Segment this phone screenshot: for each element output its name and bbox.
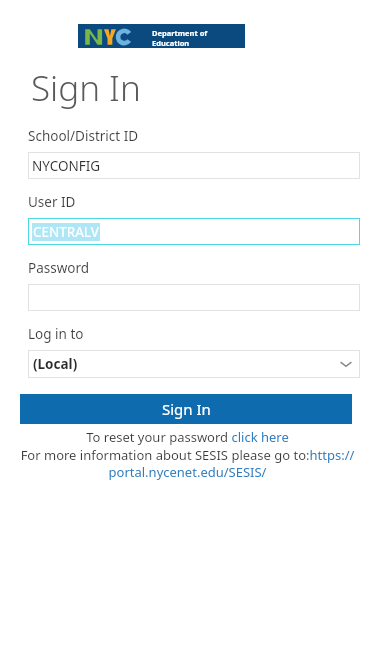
button[interactable]: Sign In: [20, 394, 352, 424]
staticText: Sign In: [162, 399, 211, 419]
other: NYC Department of Education: [78, 24, 245, 48]
button[interactable]: NYCONFIG: [28, 152, 360, 179]
staticText: Department of: [152, 28, 208, 38]
button[interactable]: (Local): [28, 350, 360, 378]
staticText: Education: [152, 38, 190, 48]
button[interactable]: To reset your password click here: [86, 428, 289, 446]
staticText: User ID: [28, 193, 76, 211]
button[interactable]: CENTRALV: [28, 218, 360, 245]
button[interactable]: For more information about SESIS please …: [18, 446, 357, 481]
staticText: Sign In: [31, 64, 141, 112]
staticText: School/District ID: [28, 127, 139, 145]
staticText: Password: [28, 259, 90, 277]
staticText: NYCONFIG: [32, 157, 101, 175]
button[interactable]: [28, 284, 360, 311]
staticText: Log in to: [28, 325, 84, 343]
other: Open dropdown: [337, 355, 355, 373]
staticText: (Local): [33, 355, 78, 373]
staticText: CENTRALV: [33, 223, 99, 241]
